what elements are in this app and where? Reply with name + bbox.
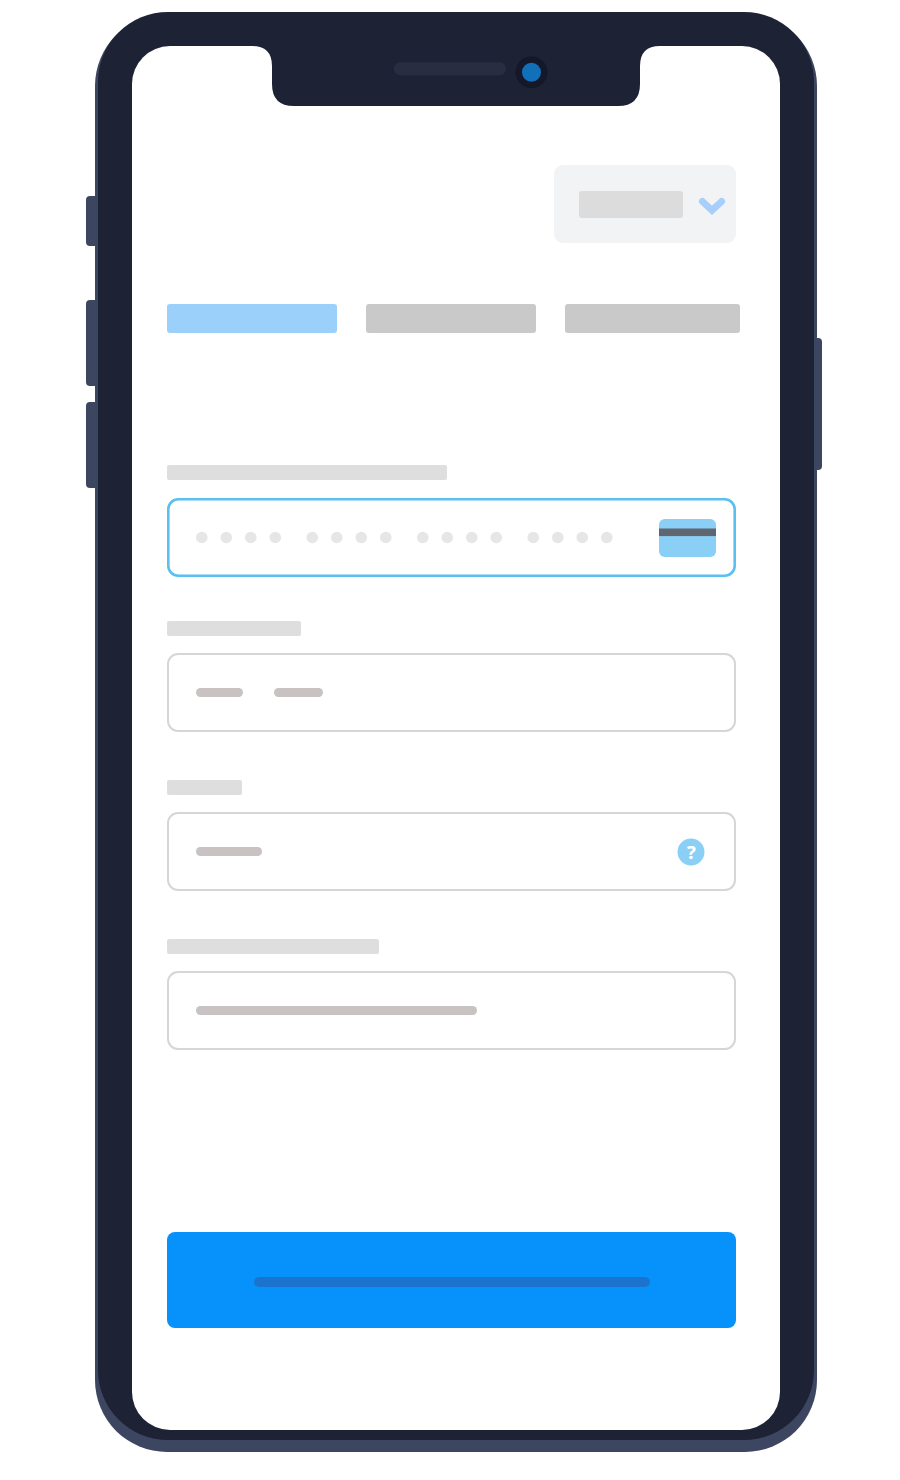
staticText: ? (687, 840, 696, 865)
button[interactable] (167, 653, 736, 732)
button[interactable]: Submit (167, 1232, 736, 1328)
button[interactable]: CVV help (167, 812, 736, 891)
button[interactable]: CVV help (672, 833, 710, 871)
button[interactable] (167, 971, 736, 1050)
button[interactable]: Select option (554, 165, 736, 243)
button[interactable] (167, 498, 736, 577)
